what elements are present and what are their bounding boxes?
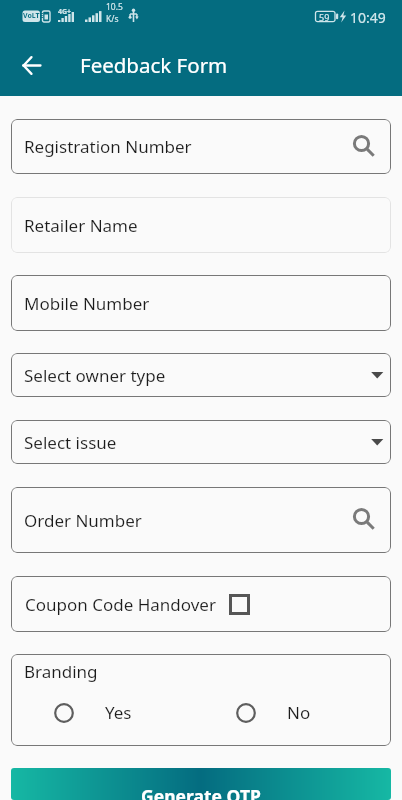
staticText: Select issue xyxy=(24,431,117,454)
staticText: 4G+ xyxy=(58,7,72,17)
button[interactable]: Select issue xyxy=(11,420,391,464)
staticText: 59 xyxy=(319,11,330,23)
staticText: No xyxy=(287,701,311,724)
staticText: Branding xyxy=(24,660,98,683)
other: Search xyxy=(352,134,378,160)
staticText: Order Number xyxy=(24,509,142,532)
staticText: Retailer Name xyxy=(24,214,138,237)
staticText: 10.5 xyxy=(106,1,123,13)
staticText: Yes xyxy=(105,701,132,724)
button[interactable]: No xyxy=(236,701,311,724)
staticText: 10:49 xyxy=(350,8,386,24)
button[interactable]: Coupon Code Handover xyxy=(11,576,391,632)
button[interactable]: Retailer Name xyxy=(11,197,391,253)
other: Open dropdown xyxy=(367,372,384,379)
button[interactable]: Back xyxy=(11,45,51,85)
staticText: K/s xyxy=(106,13,119,24)
staticText: Generate OTP xyxy=(141,784,261,800)
staticText: Coupon Code Handover xyxy=(25,593,216,616)
button[interactable]: Order Number xyxy=(11,487,391,553)
button[interactable]: Mobile Number xyxy=(11,275,391,331)
staticText: Feedback Form xyxy=(80,51,228,79)
staticText: Mobile Number xyxy=(24,292,150,315)
staticText: VoLTE xyxy=(23,11,44,21)
button[interactable]: Registration Number xyxy=(11,119,391,174)
staticText: Registration Number xyxy=(24,135,192,158)
other: Search xyxy=(352,507,378,533)
button[interactable]: Generate OTP xyxy=(11,768,391,800)
button[interactable]: Select owner type xyxy=(11,353,391,397)
other: Open dropdown xyxy=(367,439,384,446)
staticText: Select owner type xyxy=(24,364,166,387)
button[interactable]: Yes xyxy=(54,701,132,724)
